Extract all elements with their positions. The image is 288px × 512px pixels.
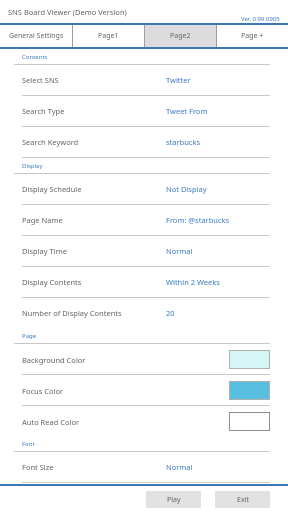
staticText: From: @starbucks (166, 215, 230, 225)
button[interactable]: Search Type (0, 96, 288, 126)
button[interactable]: Page + (217, 25, 288, 47)
staticText: Page + (241, 31, 264, 41)
staticText: Focus Color (22, 386, 64, 396)
staticText: Background Color (22, 355, 86, 365)
staticText: Tweet From (166, 106, 208, 116)
button[interactable]: Number of Display Contents (0, 298, 288, 328)
staticText: Page1 (98, 31, 119, 41)
staticText: Normal (166, 462, 193, 472)
staticText: 20 (166, 308, 175, 318)
staticText: Search Type (22, 106, 65, 116)
staticText: starbucks (166, 137, 201, 147)
staticText: Twitter (166, 75, 191, 85)
staticText: Number of Display Contents (22, 308, 122, 318)
staticText: Display Contents (22, 277, 82, 287)
button[interactable]: Select SNS (0, 65, 288, 95)
staticText: Contents (22, 53, 48, 61)
staticText: Page (22, 332, 37, 340)
button[interactable]: Display Time (0, 236, 288, 266)
staticText: Display Schedule (22, 184, 82, 194)
button[interactable]: Auto Read Color (0, 406, 288, 436)
staticText: Search Keyword (22, 137, 79, 147)
staticText: Within 2 Weeks (166, 277, 220, 287)
staticText: Normal (166, 246, 193, 256)
button[interactable]: Play (146, 491, 201, 508)
button[interactable]: Background Color (0, 344, 288, 374)
button[interactable]: Display Schedule (0, 174, 288, 204)
button[interactable]: Page2 (145, 25, 216, 47)
button[interactable]: Font Size (0, 452, 288, 482)
button[interactable]: Search Keyword (0, 127, 288, 157)
button[interactable]: Page Name (0, 205, 288, 235)
staticText: Font (22, 440, 35, 448)
button[interactable]: Page1 (73, 25, 144, 47)
button[interactable]: Display Contents (0, 267, 288, 297)
staticText: Exit (237, 495, 249, 505)
staticText: General Settings (9, 31, 64, 41)
button[interactable]: Exit (215, 491, 270, 508)
button[interactable]: General Settings (0, 25, 72, 47)
staticText: Display Time (22, 246, 67, 256)
staticText: Auto Read Color (22, 417, 80, 427)
staticText: Font Size (22, 462, 54, 472)
staticText: Page Name (22, 215, 63, 225)
staticText: Ver. 0.99.0905 (241, 15, 280, 23)
button[interactable]: Focus Color (0, 375, 288, 405)
staticText: Select SNS (22, 75, 59, 85)
staticText: Not Display (166, 184, 207, 194)
staticText: Page2 (170, 31, 191, 41)
staticText: SNS Board Viewer (Demo Version) (8, 7, 127, 17)
staticText: Play (167, 495, 181, 505)
staticText: Display (22, 162, 43, 170)
